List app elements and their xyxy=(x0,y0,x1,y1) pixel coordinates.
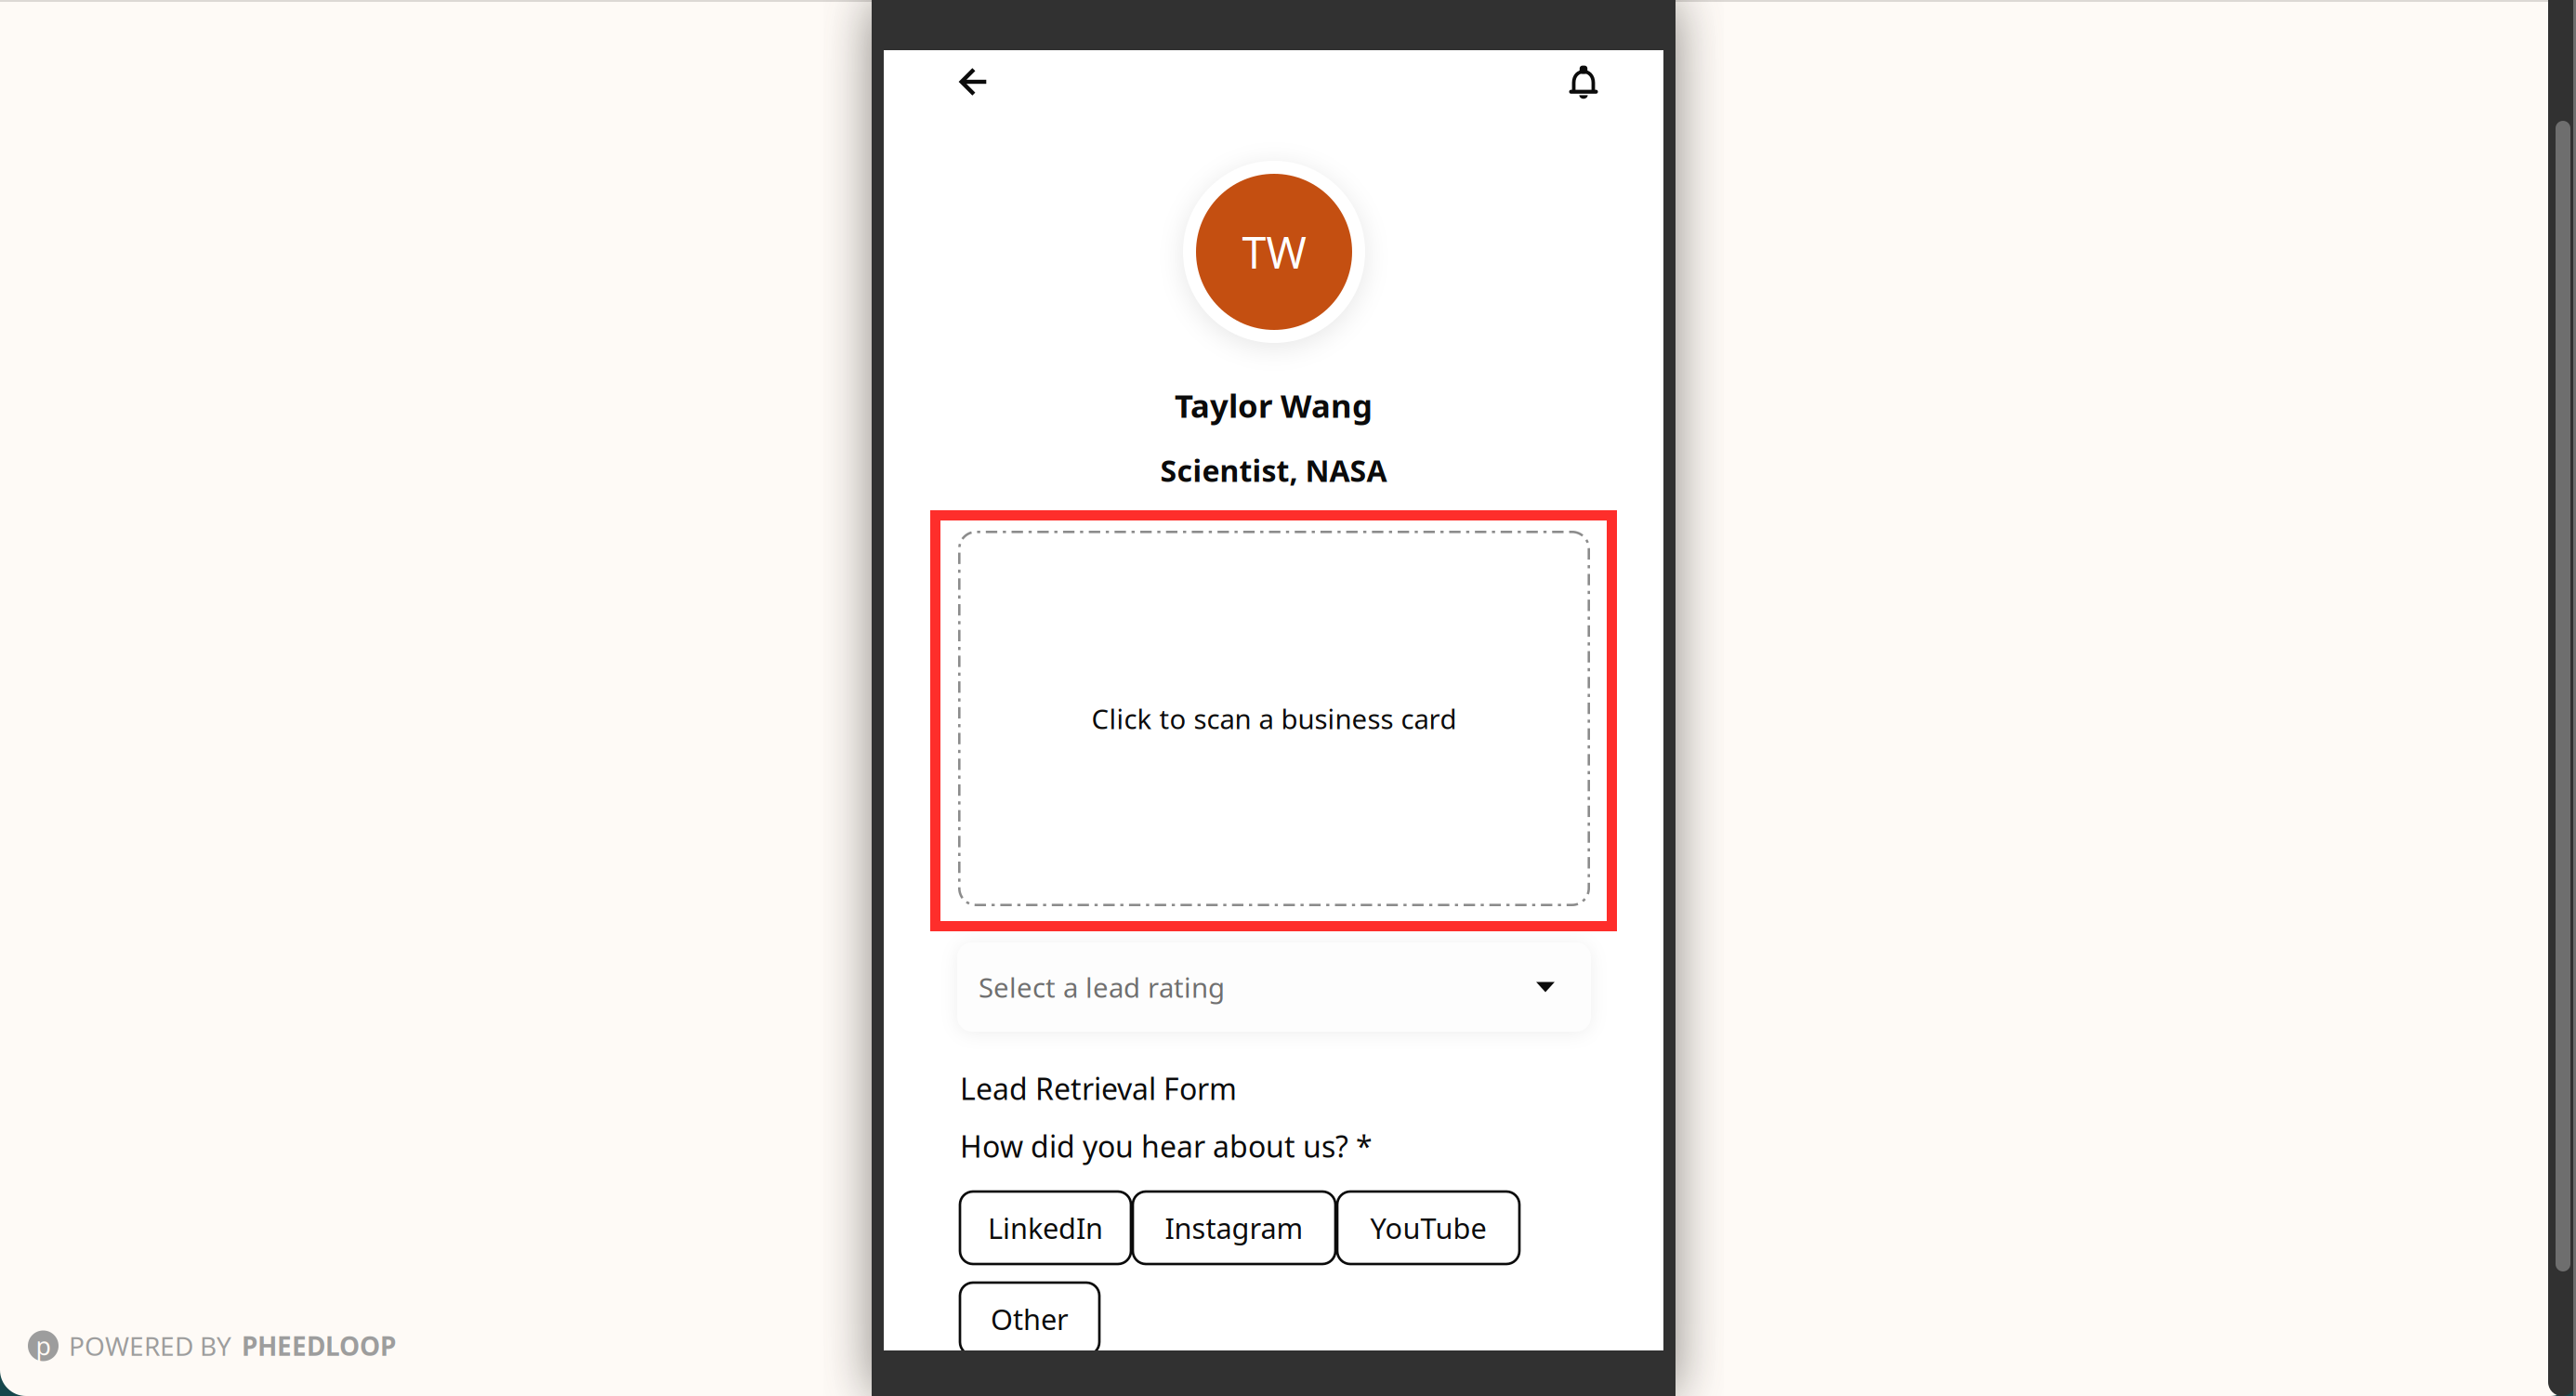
staticText: POWERED BY xyxy=(69,1329,231,1363)
staticText: Taylor Wang xyxy=(1175,384,1373,427)
button[interactable]: Other xyxy=(960,1283,1099,1355)
staticText: LinkedIn xyxy=(988,1209,1103,1247)
staticText: How did you hear about us? * xyxy=(960,1126,1373,1166)
staticText: TW xyxy=(1242,223,1306,281)
button[interactable]: Instagram xyxy=(1133,1192,1335,1264)
button[interactable]: Click to scan a business card xyxy=(930,510,1617,931)
button[interactable]: Notifications xyxy=(1550,50,1617,113)
staticText: p xyxy=(36,1329,51,1362)
button[interactable]: LinkedIn xyxy=(960,1192,1131,1264)
staticText: Select a lead rating xyxy=(979,969,1225,1005)
staticText: Click to scan a business card xyxy=(1091,700,1457,737)
button[interactable]: Back xyxy=(940,50,1007,113)
staticText: PHEEDLOOP xyxy=(242,1329,396,1363)
staticText: Other xyxy=(991,1300,1069,1338)
staticText: Lead Retrieval Form xyxy=(960,1069,1237,1108)
button[interactable]: YouTube xyxy=(1337,1192,1519,1264)
staticText: Instagram xyxy=(1165,1209,1303,1247)
staticText: Scientist, NASA xyxy=(1160,451,1387,490)
staticText: YouTube xyxy=(1370,1209,1486,1247)
button[interactable]: Select a lead rating xyxy=(957,942,1591,1032)
